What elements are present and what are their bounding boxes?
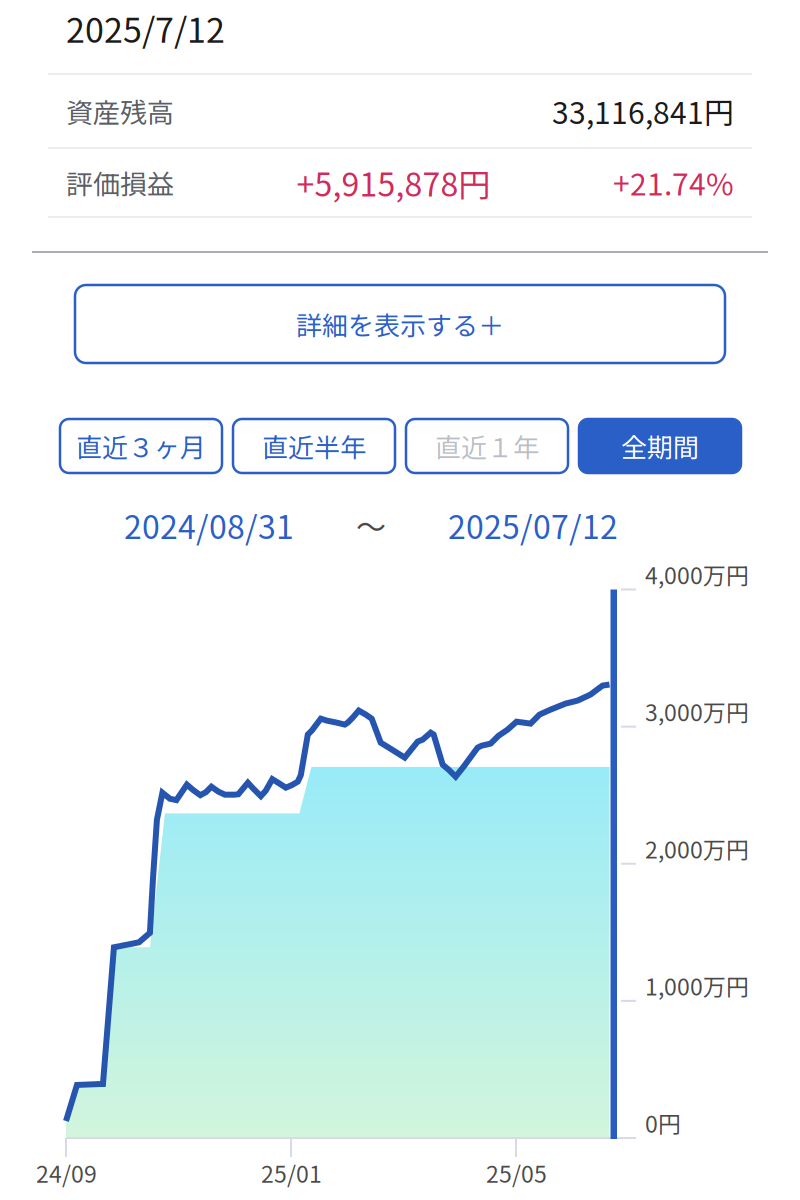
- button[interactable]: 詳細を表示する＋: [75, 285, 725, 363]
- staticText: +5,915,878円: [296, 159, 490, 206]
- staticText: 資産残高: [66, 91, 174, 131]
- staticText: 25/01: [261, 1156, 322, 1189]
- staticText: 2,000万円: [645, 832, 749, 865]
- staticText: 2024/08/31: [124, 502, 294, 548]
- staticText: 33,116,841円: [552, 89, 734, 133]
- staticText: 2025/7/12: [66, 3, 225, 53]
- staticText: +21.74%: [613, 161, 734, 204]
- staticText: 24/09: [36, 1156, 97, 1189]
- button[interactable]: 直近１年: [406, 419, 568, 473]
- staticText: 0円: [645, 1106, 681, 1139]
- button[interactable]: 直近３ヶ月: [60, 419, 222, 473]
- staticText: 2025/07/12: [448, 502, 618, 548]
- staticText: 直近半年: [262, 427, 366, 465]
- staticText: 3,000万円: [645, 695, 749, 728]
- staticText: 直近１年: [435, 427, 539, 465]
- staticText: 全期間: [621, 427, 699, 465]
- staticText: 4,000万円: [645, 557, 749, 591]
- button[interactable]: 直近半年: [233, 419, 395, 473]
- staticText: 評価損益: [66, 163, 174, 202]
- staticText: 1,000万円: [645, 969, 749, 1002]
- staticText: 25/05: [486, 1156, 547, 1189]
- staticText: 詳細を表示する＋: [296, 305, 504, 343]
- staticText: 直近３ヶ月: [76, 427, 206, 465]
- button[interactable]: 全期間: [579, 419, 741, 473]
- staticText: 〜: [356, 503, 386, 547]
